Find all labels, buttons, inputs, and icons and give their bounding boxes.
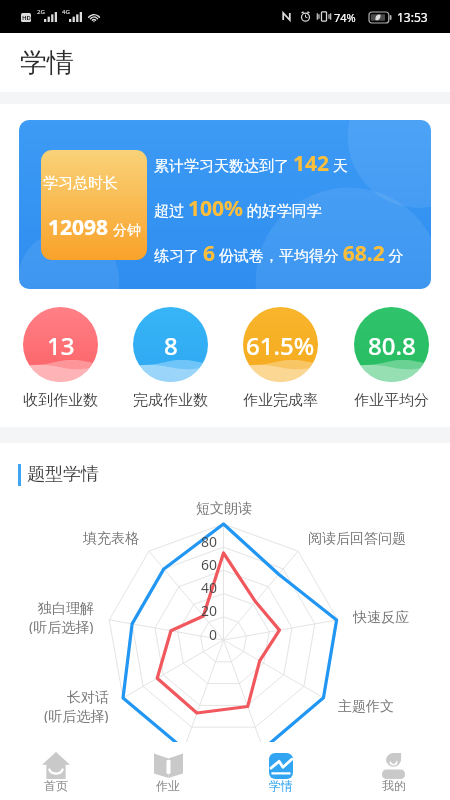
staticText: 60 — [201, 555, 218, 573]
staticText: 长对话 — [67, 689, 109, 706]
button[interactable]: 首页 — [0, 742, 112, 800]
staticText: 累计学习天数达到了 142 天 — [154, 149, 348, 178]
other: 首页 — [42, 752, 70, 779]
staticText: 题型学情 — [27, 463, 99, 486]
staticText: 分钟 — [113, 222, 141, 240]
button[interactable]: 我的 — [337, 742, 450, 800]
other: 学情 — [269, 753, 293, 779]
staticText: 学习总时长 — [43, 174, 118, 193]
staticText: 作业平均分 — [354, 391, 429, 410]
staticText: 完成作业数 — [133, 391, 208, 410]
staticText: 4G — [62, 8, 70, 16]
staticText: 短文朗读 — [196, 500, 252, 517]
staticText: 收到作业数 — [23, 391, 98, 410]
staticText: 80 — [201, 532, 218, 550]
staticText: 74% — [334, 10, 356, 25]
staticText: 填充表格 — [83, 530, 139, 547]
staticText: (听后选择) — [29, 617, 94, 634]
button[interactable]: 作业 — [112, 742, 224, 800]
staticText: 快速反应 — [353, 609, 409, 626]
staticText: 练习了 6 份试卷，平均得分 68.2 分 — [154, 239, 404, 268]
staticText: 学情 — [269, 778, 293, 793]
staticText: 13:53 — [397, 9, 428, 25]
button[interactable]: 学情 — [224, 742, 337, 800]
staticText: 作业 — [156, 778, 180, 793]
staticText: 我的 — [382, 778, 406, 793]
other: 我的 — [382, 753, 405, 779]
staticText: 8 — [164, 329, 178, 362]
staticText: 主题作文 — [338, 698, 394, 715]
staticText: 40 — [201, 578, 218, 596]
other: 作业 — [154, 753, 183, 778]
staticText: 首页 — [44, 778, 68, 793]
staticText: HD — [22, 14, 31, 22]
staticText: 12098 — [48, 213, 109, 242]
staticText: (听后选择) — [44, 706, 109, 723]
staticText: 学情 — [20, 46, 74, 80]
staticText: 作业完成率 — [243, 391, 318, 410]
staticText: 80.8 — [368, 329, 416, 362]
staticText: 13 — [47, 329, 75, 362]
staticText: 2G — [37, 8, 45, 16]
staticText: 超过 100% 的好学同学 — [154, 194, 322, 223]
button[interactable]: 学习总时长 — [19, 120, 431, 289]
staticText: 阅读后回答问题 — [308, 530, 406, 547]
staticText: 61.5% — [246, 329, 315, 362]
staticText: 20 — [201, 601, 218, 619]
staticText: 独白理解 — [38, 600, 94, 617]
staticText: 0 — [209, 625, 218, 643]
